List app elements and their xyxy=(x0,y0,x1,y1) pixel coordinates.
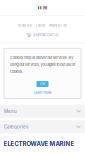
button[interactable]: LOG IN xyxy=(36,24,45,27)
button[interactable]: Categories xyxy=(0,120,85,133)
staticText: ELECTROWAVE MARINE xyxy=(3,140,74,147)
staticText: LOG IN xyxy=(36,24,45,27)
staticText: Categories xyxy=(4,124,28,129)
button[interactable]: REGISTER xyxy=(18,24,32,27)
staticText: OK xyxy=(40,82,45,86)
staticText: SHOPPING CART (0) xyxy=(32,33,59,37)
staticText: REGISTER xyxy=(18,24,32,27)
button[interactable]: Italiano xyxy=(38,6,41,9)
staticText: Learn more xyxy=(33,90,51,94)
button[interactable]: OK xyxy=(36,81,48,87)
staticText: Menu xyxy=(4,108,17,114)
button[interactable]: Learn more xyxy=(33,90,51,94)
button[interactable]: English xyxy=(43,6,47,9)
button[interactable]: Menu xyxy=(0,105,85,118)
staticText: WISHLIST (0) xyxy=(49,24,67,27)
button[interactable]: WISHLIST (0) xyxy=(49,24,67,27)
staticText: Cookies help us deliver our services. By… xyxy=(10,55,75,74)
button[interactable]: SHOPPING CART (0) xyxy=(32,33,59,37)
